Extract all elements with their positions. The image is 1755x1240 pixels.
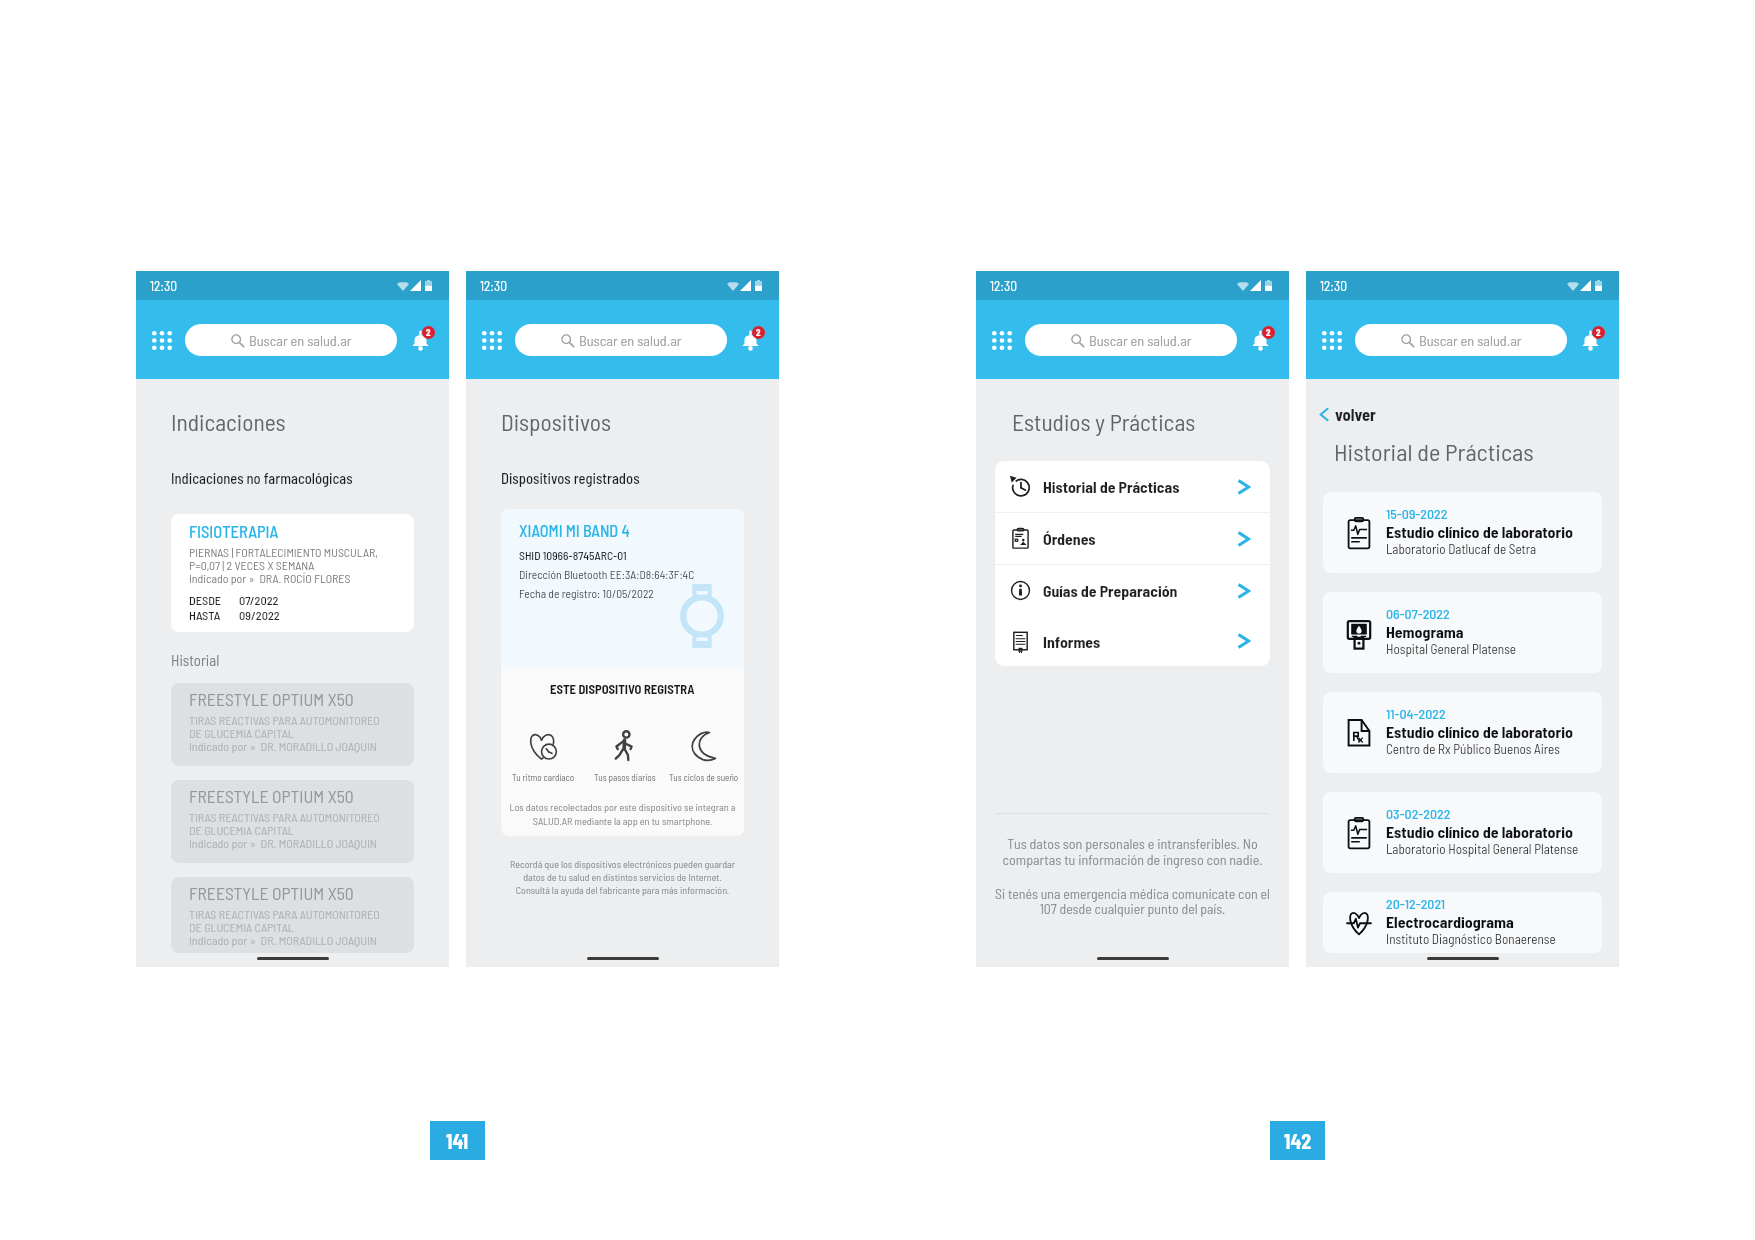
staticText: Laboratorio Datlucaf de Setra — [1386, 541, 1537, 557]
button[interactable]: Historial de Prácticas — [995, 461, 1270, 513]
staticText: Dirección Bluetooth EE:3A:D8:64:3F:4C — [519, 567, 695, 581]
staticText: Fecha de registro: 10/05/2022 — [519, 586, 654, 600]
staticText: Recordá que los dispositivos electrónico… — [501, 858, 744, 896]
staticText: 12:30 — [150, 278, 177, 294]
staticText: Tus pasos diarios — [594, 772, 656, 783]
staticText: Estudio clínico de laboratorio — [1386, 722, 1573, 741]
button[interactable]: Guías de Preparación — [995, 565, 1270, 616]
staticText: DESDE — [189, 593, 222, 608]
button[interactable]: Menú de aplicaciones — [985, 323, 1019, 357]
staticText: Instituto Diagnóstico Bonaerense — [1386, 931, 1556, 947]
button[interactable]: Buscar en salud.ar — [1025, 324, 1237, 356]
button[interactable]: FREESTYLE OPTIUM X50 — [171, 780, 414, 863]
staticText: Los datos recolectados por este disposit… — [501, 801, 744, 827]
staticText: FREESTYLE OPTIUM X50 — [189, 882, 354, 903]
button[interactable]: Informes — [995, 616, 1270, 666]
staticText: Si tenés una emergencia médica comunicat… — [995, 885, 1270, 916]
button[interactable]: Menú de aplicaciones — [1315, 323, 1349, 357]
button[interactable]: Notificaciones — [1573, 323, 1607, 357]
button[interactable]: 20-12-2021 — [1323, 892, 1602, 953]
button[interactable]: Buscar en salud.ar — [515, 324, 727, 356]
staticText: Tu ritmo cardíaco — [512, 772, 575, 783]
staticText: TIRAS REACTIVAS PARA AUTOMONITOREO DE GL… — [189, 810, 380, 850]
staticText: Historial de Prácticas — [1043, 477, 1180, 496]
staticText: Indicaciones no farmacológicas — [171, 469, 353, 487]
button[interactable]: 03-02-2022 — [1323, 792, 1602, 873]
staticText: 09/2022 — [239, 608, 280, 623]
button[interactable]: volver — [1318, 404, 1376, 424]
staticText: Tus datos son personales e intransferibl… — [995, 835, 1270, 867]
staticText: Estudio clínico de laboratorio — [1386, 822, 1573, 841]
staticText: Buscar en salud.ar — [1419, 332, 1522, 349]
staticText: 12:30 — [480, 278, 507, 294]
button[interactable]: Menú de aplicaciones — [145, 323, 179, 357]
staticText: ESTE DISPOSITIVO REGISTRA — [550, 681, 695, 696]
staticText: HASTA — [189, 608, 221, 623]
staticText: Buscar en salud.ar — [1089, 332, 1192, 349]
staticText: 15-09-2022 — [1386, 505, 1448, 522]
button[interactable]: Notificaciones — [1243, 323, 1277, 357]
staticText: TIRAS REACTIVAS PARA AUTOMONITOREO DE GL… — [189, 907, 380, 947]
staticText: Historial — [171, 651, 220, 669]
staticText: Dispositivos registrados — [501, 469, 640, 487]
button[interactable]: Buscar en salud.ar — [185, 324, 397, 356]
staticText: 20-12-2021 — [1386, 895, 1446, 912]
button[interactable]: 15-09-2022 — [1323, 492, 1602, 573]
staticText: Electrocardiograma — [1386, 912, 1514, 931]
staticText: Informes — [1043, 632, 1101, 651]
staticText: 12:30 — [990, 278, 1017, 294]
staticText: PIERNAS | FORTALECIMIENTO MUSCULAR, P=0,… — [189, 545, 378, 585]
staticText: Indicaciones — [171, 408, 286, 436]
staticText: Guías de Preparación — [1043, 581, 1178, 600]
staticText: FISIOTERAPIA — [189, 521, 279, 541]
button[interactable]: Notificaciones — [403, 323, 437, 357]
staticText: 07/2022 — [239, 593, 279, 608]
button[interactable]: FREESTYLE OPTIUM X50 — [171, 683, 414, 766]
staticText: FREESTYLE OPTIUM X50 — [189, 785, 354, 806]
staticText: Órdenes — [1043, 529, 1096, 548]
staticText: Estudio clínico de laboratorio — [1386, 522, 1573, 541]
staticText: Laboratorio Hospital General Platense — [1386, 841, 1579, 857]
staticText: 03-02-2022 — [1386, 805, 1451, 822]
staticText: Buscar en salud.ar — [579, 332, 682, 349]
staticText: Historial de Prácticas — [1334, 437, 1534, 466]
staticText: 11-04-2022 — [1386, 705, 1446, 722]
staticText: 12:30 — [1320, 278, 1347, 294]
staticText: volver — [1335, 404, 1376, 424]
button[interactable]: Notificaciones — [733, 323, 767, 357]
staticText: XIAOMI MI BAND 4 — [519, 521, 630, 540]
staticText: Dispositivos — [501, 408, 611, 436]
button[interactable]: 11-04-2022 — [1323, 692, 1602, 773]
button[interactable]: Menú de aplicaciones — [475, 323, 509, 357]
staticText: Hemograma — [1386, 622, 1464, 641]
staticText: Tus ciclos de sueño — [669, 772, 739, 783]
staticText: 141 — [446, 1129, 469, 1153]
staticText: 2 — [756, 327, 761, 338]
staticText: 2 — [1266, 327, 1271, 338]
staticText: Estudios y Prácticas — [1012, 408, 1196, 436]
button[interactable]: 06-07-2022 — [1323, 592, 1602, 673]
staticText: Buscar en salud.ar — [249, 332, 352, 349]
staticText: Centro de Rx Público Buenos Aires — [1386, 741, 1560, 757]
staticText: 2 — [1596, 327, 1601, 338]
button[interactable]: FREESTYLE OPTIUM X50 — [171, 877, 414, 953]
button[interactable]: Órdenes — [995, 513, 1270, 565]
staticText: Hospital General Platense — [1386, 641, 1516, 657]
staticText: TIRAS REACTIVAS PARA AUTOMONITOREO DE GL… — [189, 713, 380, 753]
staticText: FREESTYLE OPTIUM X50 — [189, 688, 354, 709]
button[interactable]: Buscar en salud.ar — [1355, 324, 1567, 356]
staticText: 2 — [426, 327, 431, 338]
staticText: 142 — [1284, 1129, 1312, 1153]
staticText: SHID 10966-8745ARC-01 — [519, 548, 627, 562]
staticText: 06-07-2022 — [1386, 605, 1450, 622]
